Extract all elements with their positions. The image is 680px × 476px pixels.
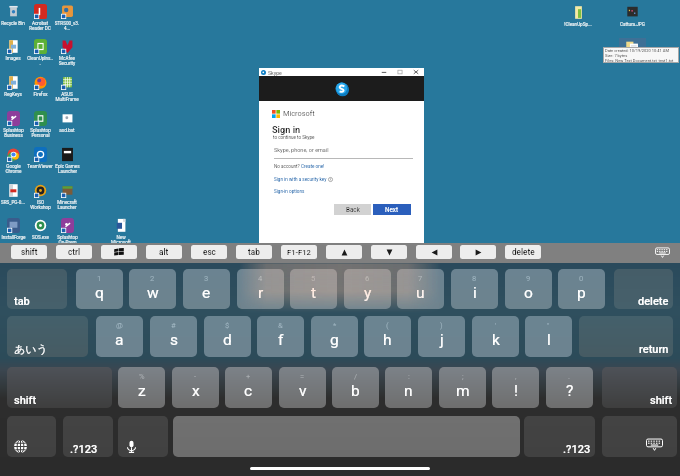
button[interactable]: 3 — [183, 269, 230, 309]
button[interactable]: CleanUpIns... — [27, 39, 53, 72]
button[interactable]: & — [257, 316, 304, 357]
staticText: alt — [159, 247, 169, 257]
button[interactable]: Epic Games Launcher — [54, 147, 80, 180]
button[interactable]: Cattura.JPG — [616, 5, 648, 38]
button[interactable]: Back — [334, 204, 371, 215]
button[interactable]: F1-F12 — [281, 245, 317, 259]
button[interactable]: / — [332, 367, 379, 408]
button[interactable]: .?123 — [524, 416, 595, 457]
button[interactable]: ASUS MultiFrame — [54, 75, 80, 108]
button[interactable]: Next — [373, 204, 411, 215]
button[interactable]: Minecraft Launcher — [54, 183, 80, 216]
button[interactable]: shift — [7, 367, 112, 408]
button[interactable]: 0 — [558, 269, 605, 309]
button[interactable]: Create one! — [301, 164, 325, 169]
button[interactable]: Hide keyboard — [602, 416, 677, 457]
button[interactable]: asd.bat — [54, 111, 80, 144]
button[interactable]: McAfee Security Sc... — [54, 39, 80, 72]
button[interactable]: Skype, phone, or email — [274, 147, 413, 160]
button[interactable]: .?123 — [63, 416, 113, 457]
staticText: CleanUpIns... — [27, 56, 53, 66]
staticText: - — [194, 372, 197, 381]
button[interactable]: InstallForge — [0, 218, 26, 251]
button[interactable]: Splashtop Business — [0, 111, 26, 144]
button[interactable]: SOS.exe — [27, 218, 53, 251]
button[interactable]: * — [311, 316, 358, 357]
button[interactable]: SRS_PG-0... — [0, 183, 26, 216]
other: Hide keyboard — [602, 416, 677, 457]
button[interactable]: shift — [11, 245, 47, 259]
button[interactable]: + — [225, 367, 272, 408]
button[interactable]: " — [525, 316, 572, 357]
button[interactable]: ' — [472, 316, 519, 357]
staticText: 5 — [311, 274, 316, 283]
button[interactable]: Splashtop On-Prem — [54, 218, 80, 251]
button[interactable]: Windows key — [101, 245, 137, 259]
button[interactable]: Sign in with a security key — [274, 177, 327, 182]
button[interactable]: ) — [418, 316, 465, 357]
button[interactable]: = — [279, 367, 326, 408]
button[interactable]: Splashtop Personal — [27, 111, 53, 144]
button[interactable]: TeamViewer — [27, 147, 53, 180]
button[interactable]: Acrobat Reader DC — [27, 4, 53, 37]
button[interactable]: 4 — [237, 269, 284, 309]
staticText: STRS00_v3.4... — [54, 21, 80, 31]
button[interactable]: return — [579, 316, 673, 357]
staticText: " — [547, 321, 550, 330]
button[interactable]: tab — [236, 245, 272, 259]
button[interactable]: # — [150, 316, 197, 357]
button[interactable]: 7 — [397, 269, 444, 309]
button[interactable]: Arrow left — [416, 245, 452, 259]
button[interactable]: Maximize — [392, 68, 408, 76]
button[interactable]: New Microsoft — [108, 218, 134, 251]
button[interactable]: $ — [204, 316, 251, 357]
button[interactable]: ctrl — [56, 245, 92, 259]
button[interactable]: ( — [364, 316, 411, 357]
button[interactable]: 1 — [76, 269, 123, 309]
button[interactable]: Sign-in options — [274, 189, 305, 194]
button[interactable]: 9 — [505, 269, 552, 309]
button[interactable]: @ — [96, 316, 143, 357]
staticText: Skype, phone, or email — [274, 147, 329, 153]
button[interactable]: Text documents — [619, 38, 646, 57]
button[interactable]: shift — [602, 367, 677, 408]
button[interactable]: % — [118, 367, 165, 408]
button[interactable]: alt — [146, 245, 182, 259]
button[interactable]: Close — [408, 68, 424, 76]
button[interactable]: ; — [439, 367, 486, 408]
staticText: InstallForge — [1, 235, 26, 240]
staticText: Sign in — [272, 124, 301, 135]
staticText: RegKeys — [4, 92, 22, 97]
button[interactable]: . — [546, 367, 593, 408]
button[interactable]: Arrow up — [326, 245, 362, 259]
button[interactable]: !CleanUpSp... — [561, 5, 595, 38]
button[interactable]: 6 — [344, 269, 391, 309]
staticText: i — [473, 284, 477, 302]
button[interactable]: esc — [191, 245, 227, 259]
button[interactable]: Minimize — [376, 68, 392, 76]
button[interactable]: Google Chrome — [0, 147, 26, 180]
button[interactable]: - — [172, 367, 219, 408]
button[interactable]: delete — [614, 269, 673, 309]
staticText: f — [278, 331, 284, 349]
button[interactable]: Change keyboard language — [7, 416, 56, 457]
button[interactable]: 5 — [290, 269, 337, 309]
button[interactable]: Arrow down — [371, 245, 407, 259]
button[interactable]: 8 — [451, 269, 498, 309]
button[interactable]: tab — [7, 269, 67, 309]
button[interactable]: : — [385, 367, 432, 408]
button[interactable]: Dictation — [118, 416, 168, 457]
button[interactable]: あいう — [7, 316, 88, 357]
button[interactable]: RegKeys — [0, 75, 26, 108]
button[interactable]: Images — [0, 39, 26, 72]
button[interactable]: delete — [505, 245, 541, 259]
button[interactable]: Recycle Bin — [0, 4, 26, 37]
button[interactable]: , — [492, 367, 539, 408]
button[interactable]: ISO Workshop — [27, 183, 53, 216]
button[interactable]: Arrow right — [460, 245, 496, 259]
button[interactable]: Firefox — [27, 75, 53, 108]
button[interactable]: Hide keyboard — [655, 247, 670, 258]
button[interactable]: STRS00_v3.4... — [54, 4, 80, 37]
button[interactable]: 2 — [129, 269, 176, 309]
